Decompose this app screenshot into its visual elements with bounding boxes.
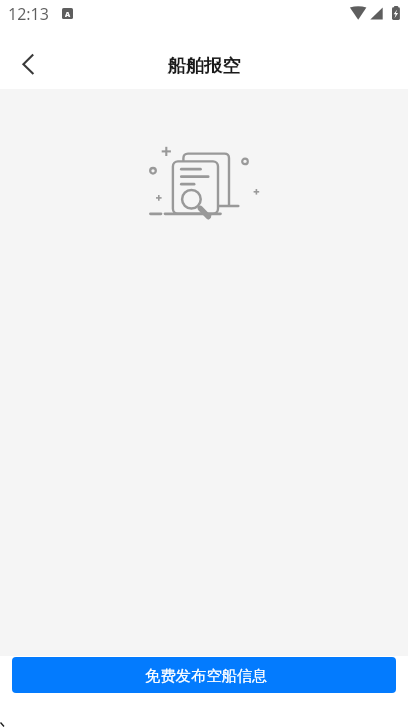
staticText: 免费发布空船信息 xyxy=(145,666,268,685)
staticText: A xyxy=(65,9,71,19)
button[interactable]: Back xyxy=(5,35,51,89)
staticText: 船舶报空 xyxy=(167,54,241,77)
button[interactable]: 免费发布空船信息 xyxy=(12,657,396,693)
staticText: 12:13 xyxy=(8,3,49,25)
